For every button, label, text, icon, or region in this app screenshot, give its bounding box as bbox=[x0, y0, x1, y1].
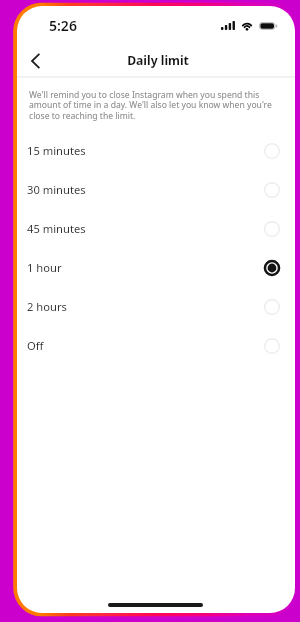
button[interactable]: Back bbox=[21, 47, 49, 75]
button[interactable]: 2 hours bbox=[17, 287, 295, 326]
button[interactable]: 1 hour bbox=[17, 248, 295, 287]
staticText: 30 minutes bbox=[27, 182, 263, 197]
staticText: We'll remind you to close Instagram when… bbox=[29, 89, 283, 122]
button[interactable]: 30 minutes bbox=[17, 170, 295, 209]
staticText: Off bbox=[27, 338, 263, 353]
staticText: Daily limit bbox=[127, 52, 189, 69]
staticText: 2 hours bbox=[27, 299, 263, 314]
staticText: 45 minutes bbox=[27, 221, 263, 236]
staticText: 1 hour bbox=[27, 260, 263, 275]
button[interactable]: 45 minutes bbox=[17, 209, 295, 248]
staticText: 5:26 bbox=[49, 16, 77, 35]
button[interactable]: 15 minutes bbox=[17, 131, 295, 170]
staticText: 15 minutes bbox=[27, 143, 263, 158]
button[interactable]: Off bbox=[17, 326, 295, 365]
